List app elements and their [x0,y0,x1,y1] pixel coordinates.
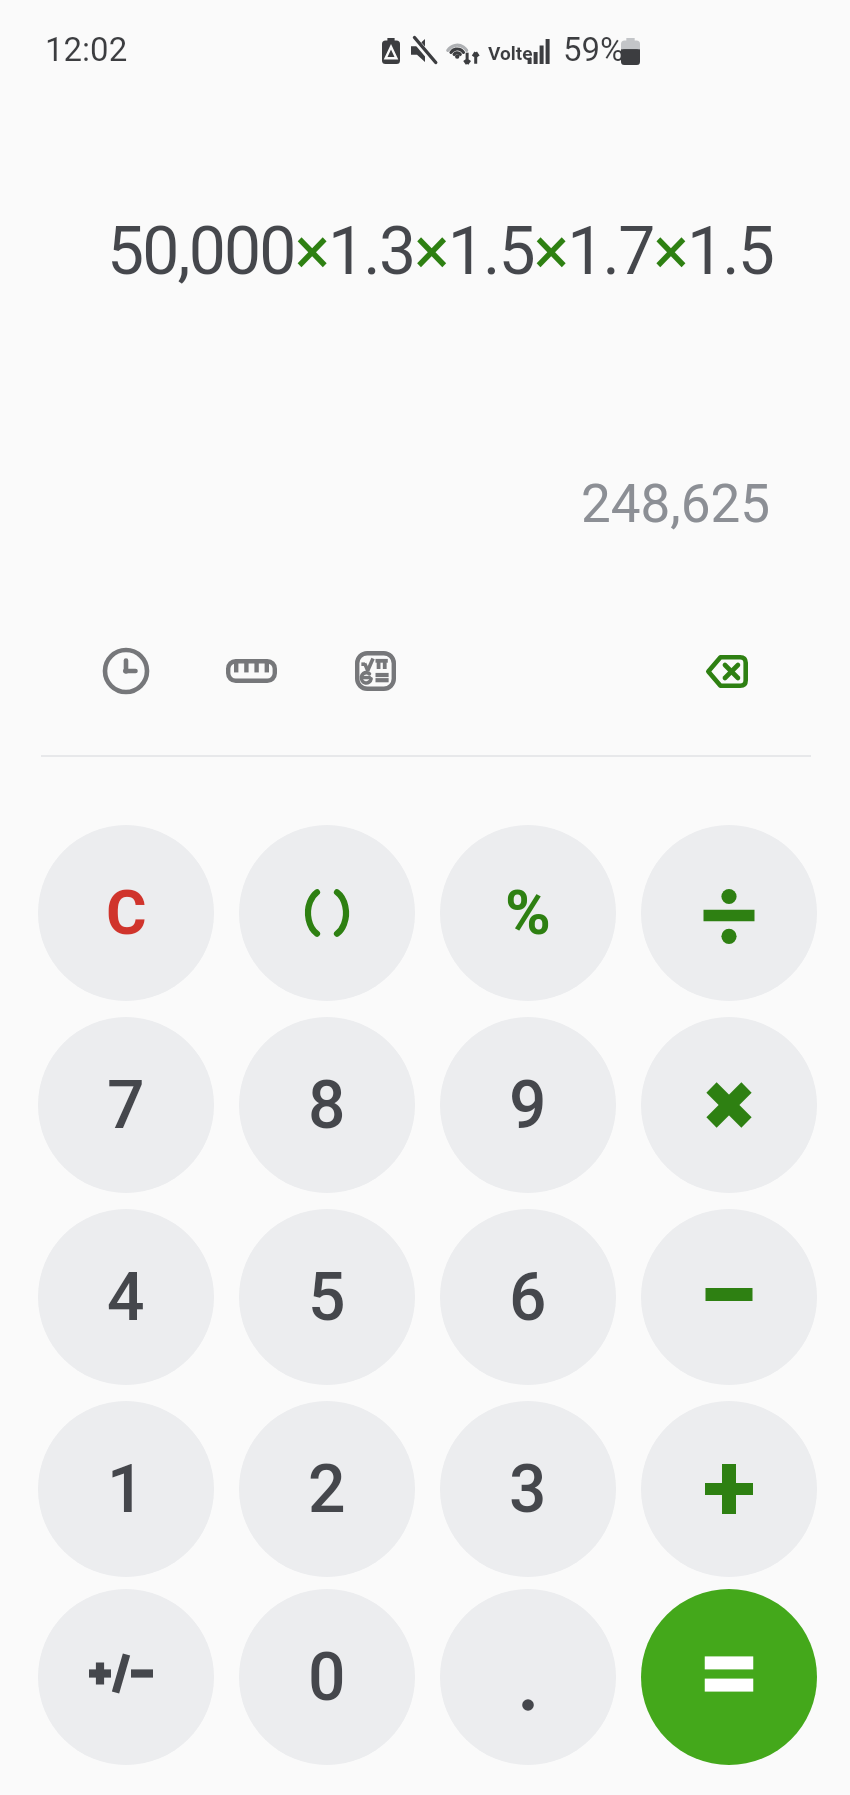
button[interactable]: 7 [38,1017,214,1193]
staticText: 9 [509,1067,547,1144]
staticText: 6 [509,1259,547,1336]
button[interactable]: Unit converter [207,627,295,715]
button[interactable]: Clear [38,825,214,1001]
button[interactable]: 6 [440,1209,616,1385]
staticText: 5 [308,1259,346,1336]
staticText: 3 [509,1451,547,1528]
button[interactable]: Divide [641,825,817,1001]
button[interactable]: 8 [239,1017,415,1193]
button[interactable]: Parentheses [239,825,415,1001]
staticText: 8 [308,1067,346,1144]
staticText: % [505,876,551,949]
staticText: 2 [308,1451,346,1528]
staticText: 59% [563,30,625,69]
staticText: 12:02 [45,30,128,69]
button[interactable]: 2 [239,1401,415,1577]
staticText: 0 [308,1639,346,1716]
staticText: 4 [107,1259,145,1336]
button[interactable]: Subtract [641,1209,817,1385]
button[interactable]: History [82,627,170,715]
staticText: 1 [107,1451,145,1528]
button[interactable]: Scientific calculator [331,627,419,715]
button[interactable]: Decimal point [440,1589,616,1765]
button[interactable]: Equals [641,1589,817,1765]
button[interactable]: 1 [38,1401,214,1577]
button[interactable]: 3 [440,1401,616,1577]
button[interactable]: Add [641,1401,817,1577]
staticText: Volte [488,42,533,64]
staticText: 50,000×1.3×1.5×1.7×1.5 [107,213,774,290]
button[interactable]: Multiply [641,1017,817,1193]
button[interactable]: Backspace [682,627,770,715]
button[interactable]: Plus minus [38,1589,214,1765]
staticText: 7 [107,1067,145,1144]
button[interactable]: 9 [440,1017,616,1193]
button[interactable]: 4 [38,1209,214,1385]
staticText: 248,625 [581,473,771,535]
staticText: C [106,876,147,949]
button[interactable]: Percent [440,825,616,1001]
button[interactable]: 0 [239,1589,415,1765]
button[interactable]: 5 [239,1209,415,1385]
